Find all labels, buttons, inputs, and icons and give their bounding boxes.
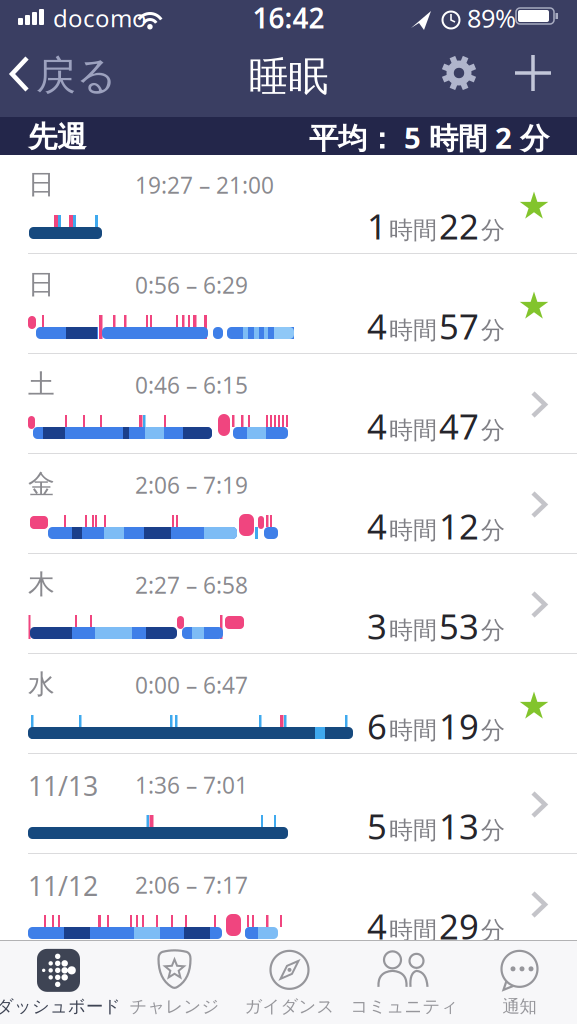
button[interactable]: チャレンジ bbox=[117, 943, 232, 1023]
staticText: 時間 bbox=[389, 815, 437, 845]
staticText: 13 bbox=[439, 803, 479, 849]
staticText: 時間 bbox=[389, 515, 437, 545]
staticText: 0:00 – 6:47 bbox=[135, 670, 248, 700]
staticText: 2:06 – 7:19 bbox=[135, 470, 248, 500]
staticText: 時間 bbox=[389, 715, 437, 745]
staticText: 平均： 5 時間 2 分 bbox=[309, 118, 549, 157]
staticText: 木 bbox=[28, 568, 55, 601]
button[interactable]: ダッシュボード bbox=[0, 943, 117, 1023]
button[interactable]: コミュニティ bbox=[347, 943, 462, 1023]
button[interactable]: 日 bbox=[0, 154, 577, 254]
staticText: 4 bbox=[367, 503, 387, 549]
staticText: 時間 bbox=[389, 915, 437, 945]
staticText: 2:27 – 6:58 bbox=[135, 570, 248, 600]
staticText: 1:36 – 7:01 bbox=[135, 770, 248, 800]
button[interactable]: 11/13 bbox=[0, 754, 577, 854]
staticText: 日 bbox=[28, 168, 55, 201]
staticText: 分 bbox=[481, 815, 505, 845]
staticText: 戻る bbox=[36, 51, 117, 100]
staticText: docomo bbox=[53, 2, 147, 34]
button[interactable]: 通知 bbox=[462, 943, 577, 1023]
staticText: 53 bbox=[439, 603, 479, 649]
button[interactable]: ガイダンス bbox=[232, 943, 347, 1023]
staticText: 3 bbox=[367, 603, 387, 649]
staticText: 16:42 bbox=[252, 0, 324, 36]
staticText: 分 bbox=[481, 315, 505, 345]
staticText: 5 bbox=[367, 803, 387, 849]
staticText: 47 bbox=[439, 403, 479, 449]
staticText: 22 bbox=[439, 203, 479, 249]
button[interactable]: 設定 bbox=[437, 51, 481, 95]
staticText: 19 bbox=[439, 703, 479, 749]
staticText: 11/12 bbox=[28, 868, 98, 903]
staticText: 先週 bbox=[28, 119, 86, 155]
staticText: 6 bbox=[367, 703, 387, 749]
staticText: ガイダンス bbox=[244, 996, 334, 1017]
button[interactable]: 金 bbox=[0, 454, 577, 554]
staticText: 29 bbox=[439, 903, 479, 949]
staticText: 0:56 – 6:29 bbox=[135, 270, 248, 300]
staticText: 0:46 – 6:15 bbox=[135, 370, 248, 400]
staticText: 時間 bbox=[389, 315, 437, 345]
staticText: 19:27 – 21:00 bbox=[135, 170, 274, 200]
staticText: 12 bbox=[439, 503, 479, 549]
staticText: コミュニティ bbox=[350, 996, 458, 1017]
staticText: 11/13 bbox=[28, 768, 98, 803]
button[interactable]: 水 bbox=[0, 654, 577, 754]
staticText: 時間 bbox=[389, 415, 437, 445]
button[interactable]: 木 bbox=[0, 554, 577, 654]
staticText: 分 bbox=[481, 915, 505, 945]
staticText: 通知 bbox=[502, 996, 536, 1017]
staticText: 4 bbox=[367, 903, 387, 949]
staticText: 分 bbox=[481, 715, 505, 745]
staticText: ダッシュボード bbox=[0, 996, 121, 1017]
button[interactable]: 日 bbox=[0, 254, 577, 354]
staticText: 分 bbox=[481, 415, 505, 445]
staticText: 土 bbox=[28, 368, 55, 401]
staticText: 分 bbox=[481, 515, 505, 545]
staticText: 水 bbox=[28, 668, 55, 701]
staticText: 89% bbox=[467, 1, 516, 35]
staticText: 57 bbox=[439, 303, 479, 349]
staticText: 時間 bbox=[389, 215, 437, 245]
staticText: チャレンジ bbox=[129, 996, 219, 1017]
staticText: 1 bbox=[367, 203, 387, 249]
staticText: 金 bbox=[28, 468, 55, 501]
staticText: 4 bbox=[367, 303, 387, 349]
button[interactable]: 戻る bbox=[0, 47, 110, 101]
staticText: 日 bbox=[28, 268, 55, 301]
button[interactable]: 追加 bbox=[511, 51, 555, 95]
staticText: 時間 bbox=[389, 615, 437, 645]
staticText: 分 bbox=[481, 215, 505, 245]
staticText: 2:06 – 7:17 bbox=[135, 870, 248, 900]
button[interactable]: 土 bbox=[0, 354, 577, 454]
button[interactable]: 11/12 bbox=[0, 854, 577, 954]
staticText: 4 bbox=[367, 403, 387, 449]
staticText: 睡眠 bbox=[248, 52, 328, 101]
staticText: 分 bbox=[481, 615, 505, 645]
